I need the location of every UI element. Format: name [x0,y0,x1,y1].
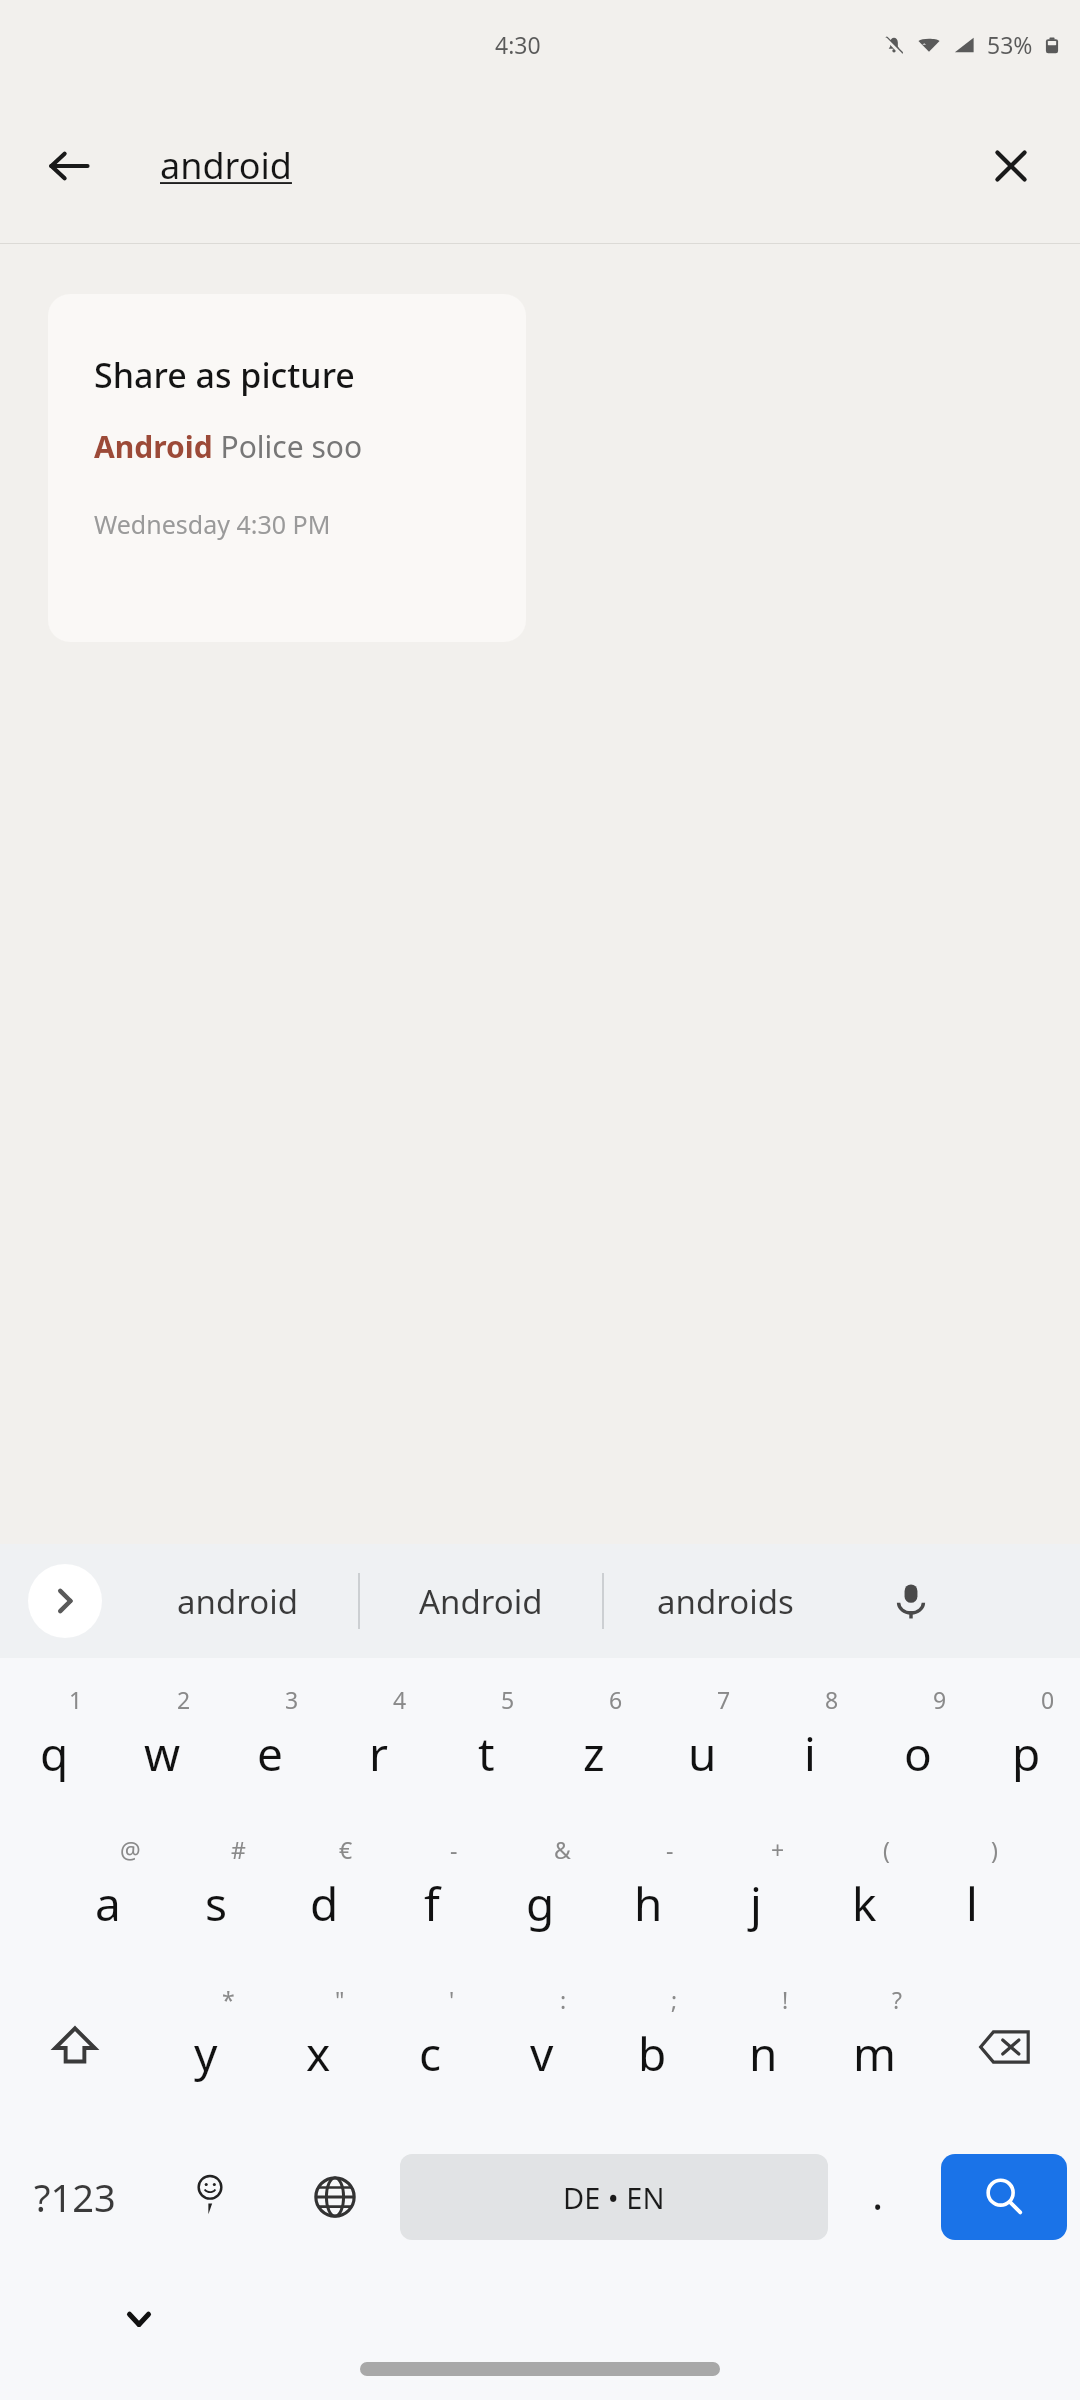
staticText: . [872,2165,884,2222]
staticText: q [40,1722,69,1785]
staticText: ?123 [34,2171,116,2223]
staticText: + [771,1834,785,1865]
staticText: 9 [933,1684,947,1715]
button[interactable]: t [432,1672,540,1822]
button[interactable]: w [108,1672,216,1822]
staticText: 53% [987,29,1033,60]
staticText: ) [991,1834,998,1865]
staticText: f [424,1872,440,1935]
button[interactable]: g [486,1822,594,1972]
button[interactable]: Backspace [930,1972,1080,2122]
staticText: r [369,1722,388,1785]
button[interactable]: . [828,2122,928,2272]
staticText: & [554,1834,571,1865]
staticText: p [1012,1722,1041,1785]
button[interactable]: y [150,1972,262,2122]
staticText: x [306,2022,331,2085]
staticText: ' [449,1984,455,2015]
staticText: l [966,1872,978,1935]
button[interactable]: DE • EN [400,2154,828,2240]
button[interactable]: n [708,1972,819,2122]
button[interactable]: a [54,1822,162,1972]
staticText: c [419,2022,442,2085]
staticText: Android [419,1579,543,1624]
staticText: " [335,1984,345,2015]
staticText: e [257,1722,283,1785]
staticText: android [160,141,292,190]
button[interactable]: r [324,1672,432,1822]
button[interactable]: Clear search [980,135,1042,197]
staticText: : [560,1984,567,2015]
button[interactable]: Emoji and comma [150,2122,270,2272]
staticText: o [904,1722,932,1785]
staticText: ! [782,1984,789,2015]
staticText: i [804,1722,816,1785]
button[interactable]: v [486,1972,597,2122]
staticText: @ [120,1834,141,1865]
staticText: d [310,1872,339,1935]
staticText: 3 [285,1684,299,1715]
staticText: android [177,1579,298,1624]
staticText: 8 [825,1684,839,1715]
button[interactable]: e [216,1672,324,1822]
staticText: v [530,2022,554,2085]
staticText: w [144,1722,181,1785]
staticText: a [95,1872,121,1935]
button[interactable]: s [162,1822,270,1972]
staticText: k [852,1872,877,1935]
staticText: 5 [501,1684,515,1715]
staticText: g [526,1872,555,1935]
button[interactable]: l [918,1822,1026,1972]
button[interactable]: Back [38,135,100,197]
staticText: DE • EN [563,2178,665,2217]
staticText: - [450,1834,458,1865]
button[interactable]: ?123 [0,2122,150,2272]
staticText: Wednesday 4:30 PM [94,507,331,541]
button[interactable]: x [262,1972,374,2122]
button[interactable]: h [594,1822,702,1972]
button[interactable]: u [648,1672,756,1822]
staticText: y [194,2022,218,2085]
button[interactable]: q [0,1672,108,1822]
button[interactable]: Change language [270,2122,400,2272]
button[interactable]: c [374,1972,486,2122]
staticText: # [231,1834,246,1865]
button[interactable]: b [597,1972,708,2122]
staticText: h [634,1872,663,1935]
staticText: Share as picture [94,352,355,398]
button[interactable]: o [864,1672,972,1822]
button[interactable]: i [756,1672,864,1822]
staticText: 7 [717,1684,731,1715]
button[interactable]: d [270,1822,378,1972]
button[interactable]: p [972,1672,1080,1822]
button[interactable]: Voice input [846,1544,976,1658]
button[interactable]: More suggestions [28,1564,102,1638]
button[interactable]: f [378,1822,486,1972]
staticText: € [339,1834,353,1865]
staticText: 4:30 [495,29,541,60]
staticText: * [222,1984,235,2015]
button[interactable]: Share as picture [48,294,526,642]
button[interactable]: k [810,1822,918,1972]
staticText: ( [883,1834,890,1865]
staticText: j [750,1872,762,1935]
staticText: 2 [177,1684,191,1715]
button[interactable]: Hide keyboard [110,2290,168,2348]
staticText: 4 [393,1684,407,1715]
button[interactable]: android [116,1544,358,1658]
button[interactable]: android [160,141,292,190]
button[interactable]: z [540,1672,648,1822]
staticText: m [853,2022,897,2085]
button[interactable]: Android [360,1544,602,1658]
button[interactable]: j [702,1822,810,1972]
staticText: androids [657,1579,794,1624]
staticText: t [478,1722,495,1785]
staticText: Android Police soo [94,426,363,467]
button[interactable]: m [819,1972,930,2122]
button[interactable]: Search [941,2154,1067,2240]
staticText: - [666,1834,674,1865]
staticText: b [638,2022,667,2085]
button[interactable]: Shift [0,1972,150,2122]
staticText: 6 [609,1684,623,1715]
button[interactable]: androids [604,1544,846,1658]
